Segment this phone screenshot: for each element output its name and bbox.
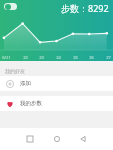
staticText: 我的步数 — [20, 100, 42, 107]
button[interactable]: Home — [49, 131, 65, 147]
button[interactable]: Back — [75, 131, 91, 147]
staticText: 24 — [56, 55, 61, 60]
staticText: 添加 — [20, 80, 31, 87]
staticText: 25 — [73, 55, 78, 60]
staticText: 26 — [89, 55, 94, 60]
staticText: 步数：8292 — [61, 2, 109, 14]
staticText: 23 — [39, 55, 44, 60]
button[interactable]: 添加 — [0, 76, 113, 91]
staticText: 我的好友 — [5, 68, 25, 74]
staticText: 27 — [106, 55, 111, 60]
button[interactable]: Profile — [4, 3, 17, 10]
button[interactable]: 我的步数 — [0, 96, 113, 111]
staticText: 22 — [23, 55, 28, 60]
staticText: 6/21 — [2, 55, 11, 60]
button[interactable]: Recent apps — [22, 131, 38, 147]
